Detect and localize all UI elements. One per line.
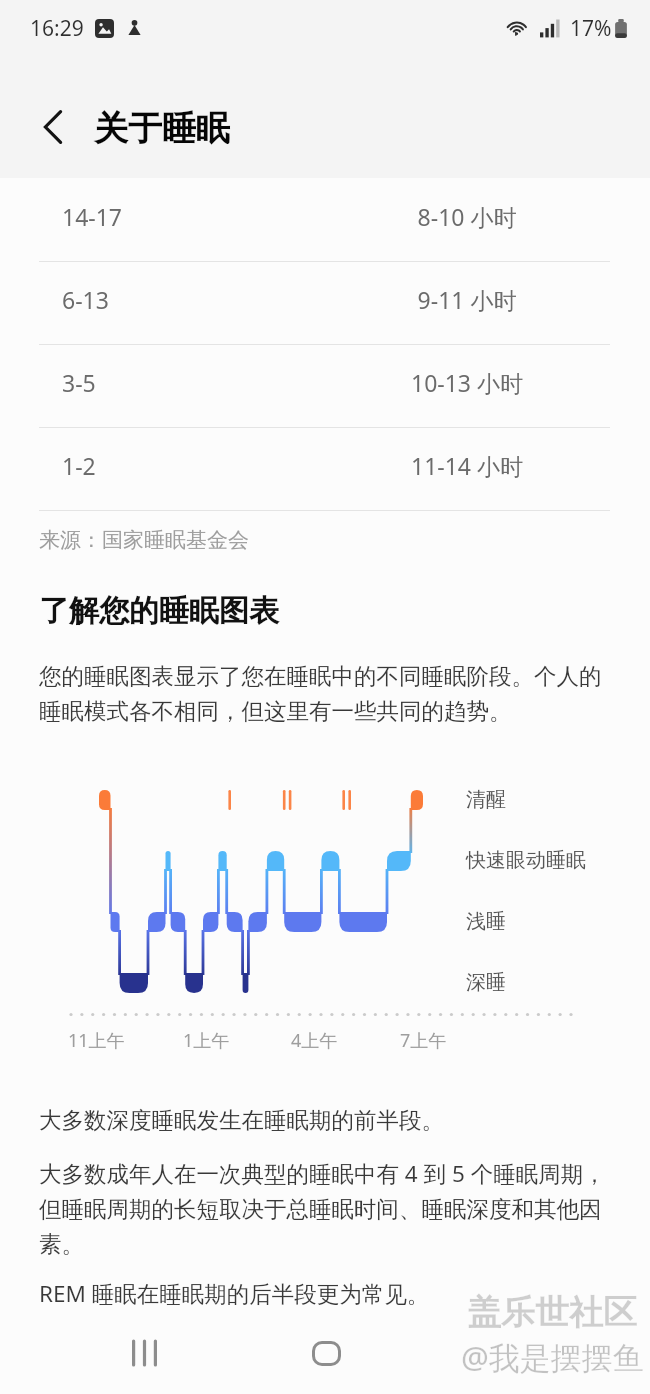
button[interactable]: Home bbox=[294, 1321, 358, 1385]
staticText: 盖乐世社区 bbox=[467, 1291, 637, 1334]
staticText: 17% bbox=[570, 14, 612, 43]
staticText: 清醒 bbox=[466, 787, 506, 812]
staticText: 7上午 bbox=[400, 1028, 447, 1053]
staticText: 3-5 bbox=[62, 367, 96, 398]
button[interactable]: 14-17 bbox=[0, 178, 650, 261]
button[interactable]: 6-13 bbox=[0, 261, 650, 344]
staticText: 11-14 小时 bbox=[327, 450, 607, 481]
button[interactable]: Back bbox=[21, 95, 85, 159]
button[interactable]: Recents bbox=[112, 1321, 176, 1385]
staticText: 11上午 bbox=[68, 1028, 125, 1053]
staticText: 快速眼动睡眠 bbox=[466, 848, 586, 873]
staticText: @我是摆摆鱼 bbox=[461, 1336, 644, 1378]
staticText: 1-2 bbox=[62, 450, 96, 481]
staticText: 9-11 小时 bbox=[327, 284, 607, 315]
staticText: 14-17 bbox=[62, 201, 123, 232]
button[interactable]: 1-2 bbox=[0, 427, 650, 510]
button[interactable]: 3-5 bbox=[0, 344, 650, 427]
staticText: 8-10 小时 bbox=[327, 201, 607, 232]
staticText: 您的睡眠图表显示了您在睡眠中的不同睡眠阶段。个人的睡眠模式各不相同，但这里有一些… bbox=[39, 662, 613, 726]
staticText: 10-13 小时 bbox=[327, 367, 607, 398]
staticText: 关于睡眠 bbox=[94, 107, 230, 150]
staticText: 来源：国家睡眠基金会 bbox=[39, 527, 249, 553]
staticText: 大多数深度睡眠发生在睡眠期的前半段。 bbox=[39, 1106, 613, 1134]
staticText: 16:29 bbox=[30, 14, 84, 43]
staticText: 大多数成年人在一次典型的睡眠中有 4 到 5 个睡眠周期，但睡眠周期的长短取决于… bbox=[39, 1158, 613, 1259]
staticText: 了解您的睡眠图表 bbox=[39, 592, 279, 630]
staticText: 浅睡 bbox=[466, 909, 506, 934]
staticText: 1上午 bbox=[183, 1028, 230, 1053]
staticText: 深睡 bbox=[466, 970, 506, 995]
staticText: 4上午 bbox=[291, 1028, 338, 1053]
staticText: REM 睡眠在睡眠期的后半段更为常见。 bbox=[39, 1278, 613, 1309]
staticText: 6-13 bbox=[62, 284, 109, 315]
